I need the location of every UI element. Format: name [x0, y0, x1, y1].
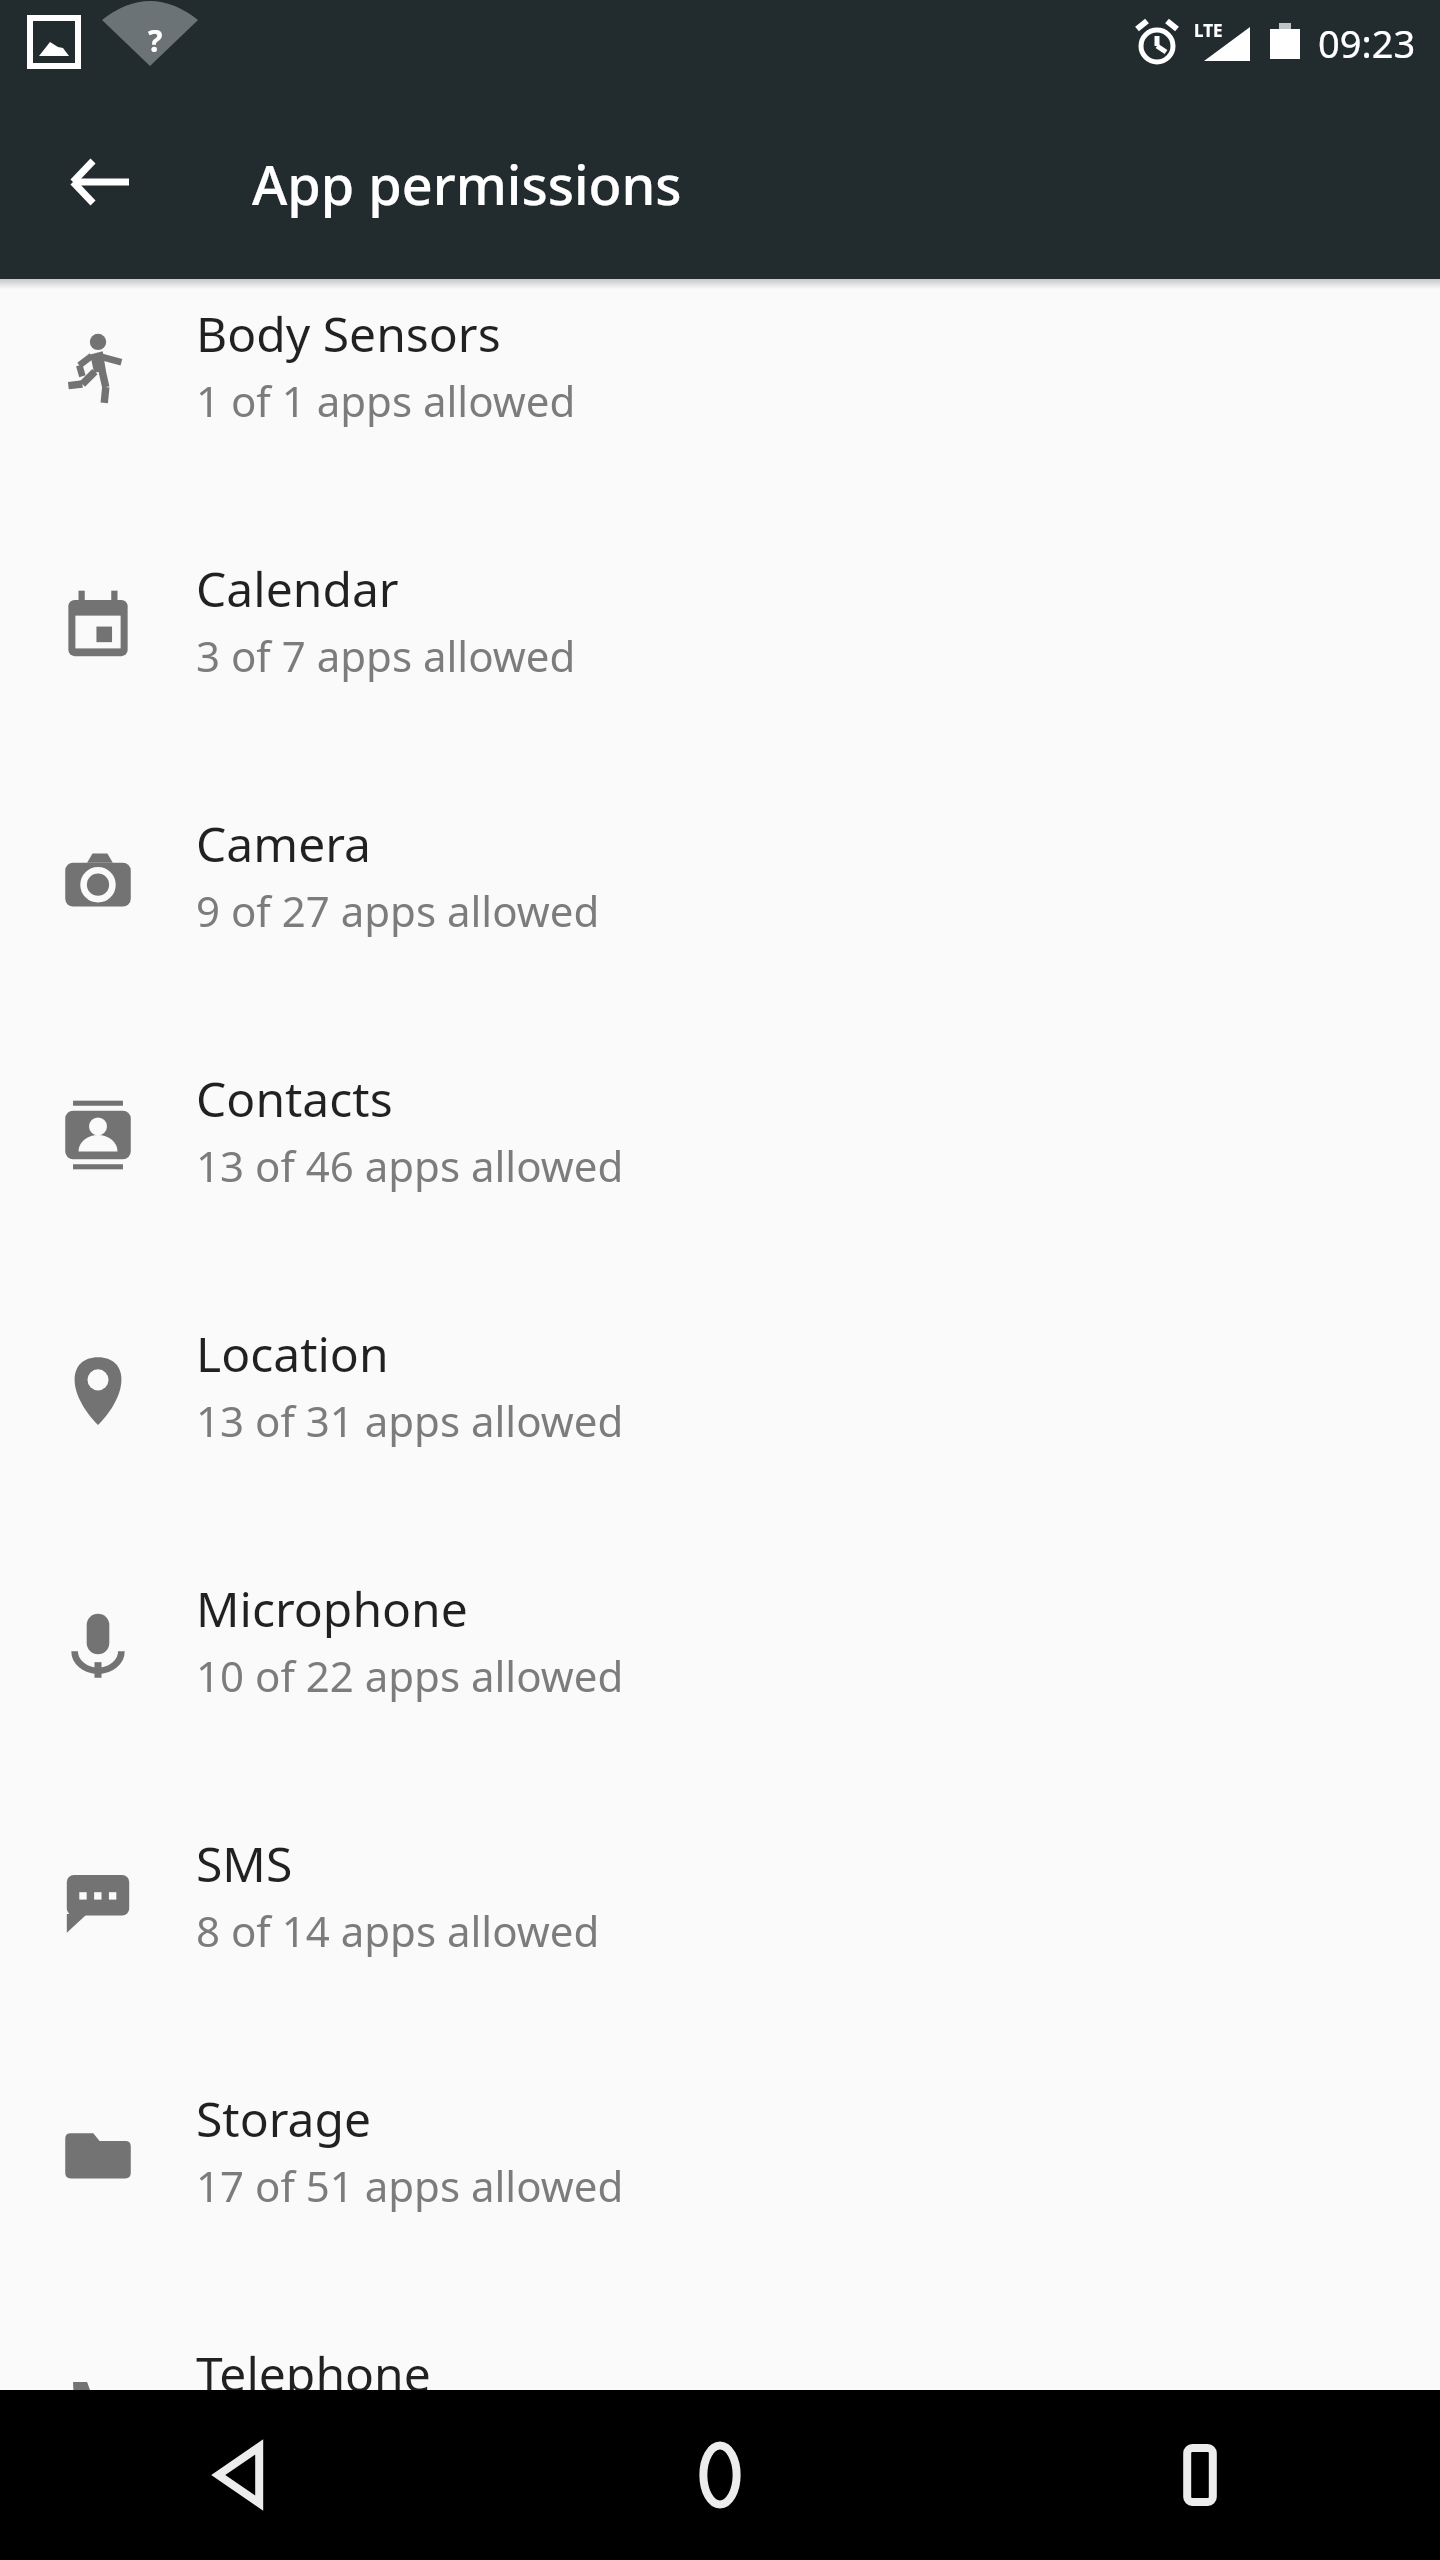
staticText: LTE: [1194, 19, 1223, 42]
button[interactable]: SMS: [0, 1819, 1440, 2074]
staticText: 3 of 7 apps allowed: [196, 627, 576, 684]
staticText: 9 of 27 apps allowed: [196, 882, 600, 939]
staticText: 10 of 22 apps allowed: [196, 1647, 624, 1704]
staticText: 12 of 33 apps allowed: [196, 2412, 624, 2469]
staticText: Camera: [196, 811, 372, 876]
button[interactable]: Back: [28, 110, 172, 254]
staticText: 8 of 14 apps allowed: [196, 1902, 600, 1959]
button[interactable]: Recent apps: [960, 2390, 1440, 2560]
staticText: Telephone: [196, 2341, 431, 2406]
button[interactable]: Contacts: [0, 1054, 1440, 1309]
staticText: 13 of 46 apps allowed: [196, 1137, 624, 1194]
staticText: Body Sensors: [196, 301, 501, 366]
staticText: SMS: [196, 1831, 293, 1896]
button[interactable]: Camera: [0, 799, 1440, 1054]
staticText: App permissions: [252, 147, 682, 221]
staticText: 13 of 31 apps allowed: [196, 1392, 624, 1449]
button[interactable]: Body Sensors: [0, 289, 1440, 544]
staticText: Microphone: [196, 1576, 468, 1641]
button[interactable]: Storage: [0, 2074, 1440, 2329]
button[interactable]: Location: [0, 1309, 1440, 1564]
button[interactable]: Microphone: [0, 1564, 1440, 1819]
staticText: Contacts: [196, 1066, 393, 1131]
button[interactable]: Back: [0, 2390, 480, 2560]
button[interactable]: Home: [480, 2390, 960, 2560]
button[interactable]: Calendar: [0, 544, 1440, 799]
staticText: 09:23: [1318, 17, 1416, 69]
staticText: Calendar: [196, 556, 399, 621]
staticText: 1 of 1 apps allowed: [196, 372, 576, 429]
button[interactable]: Telephone: [0, 2329, 1440, 2560]
staticText: ?: [148, 20, 163, 61]
staticText: Location: [196, 1321, 389, 1386]
staticText: Storage: [196, 2086, 372, 2151]
staticText: 17 of 51 apps allowed: [196, 2157, 624, 2214]
